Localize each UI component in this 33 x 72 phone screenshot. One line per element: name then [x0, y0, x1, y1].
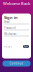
- staticText: Go: [24, 45, 28, 48]
- staticText: Password: [4, 26, 16, 30]
- staticText: Welcome Back: [3, 1, 30, 6]
- staticText: Continue: [9, 62, 23, 65]
- button[interactable]: Go: [23, 45, 29, 48]
- staticText: Sign in: [4, 15, 18, 20]
- staticText: Reset: [4, 45, 12, 48]
- button[interactable]: Continue: [2, 60, 30, 66]
- staticText: Workspace: [4, 32, 17, 36]
- staticText: Email: [4, 20, 10, 24]
